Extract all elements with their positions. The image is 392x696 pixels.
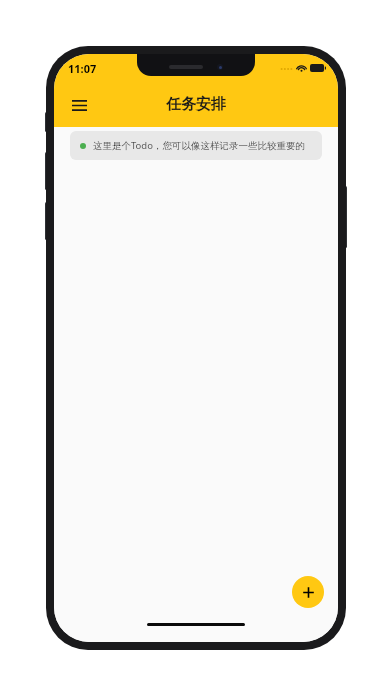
staticText: 这里是个Todo，您可以像这样记录一些比较重要的事情 (93, 139, 312, 152)
button[interactable]: Menu (62, 88, 96, 122)
button[interactable]: Add task (292, 576, 324, 608)
button[interactable]: 这里是个Todo，您可以像这样记录一些比较重要的事情 (70, 131, 322, 160)
staticText: 11:07 (68, 61, 97, 76)
staticText: 任务安排 (166, 95, 226, 114)
